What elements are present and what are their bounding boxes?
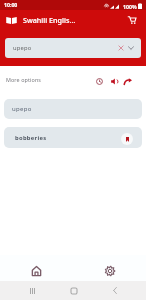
staticText: 100% [123, 3, 137, 10]
button[interactable]: upepo [5, 38, 141, 58]
button[interactable]: Back [108, 284, 121, 297]
staticText: Swahili Englis… [23, 15, 76, 25]
staticText: 10:00 [4, 1, 18, 8]
button[interactable]: Home [25, 261, 47, 280]
button[interactable]: Expand [124, 41, 138, 55]
button[interactable]: bobberies [4, 127, 142, 148]
button[interactable]: Recents [26, 284, 39, 297]
staticText: More options [6, 76, 41, 83]
button[interactable]: Shopping cart [124, 12, 140, 28]
button[interactable]: History [92, 74, 106, 88]
button[interactable]: Clear [114, 41, 128, 55]
staticText: bobberies [15, 134, 47, 142]
button[interactable]: Share [121, 74, 135, 88]
button[interactable]: Dictionary [3, 11, 20, 28]
button[interactable]: Home button [67, 284, 80, 297]
staticText: upepo [13, 44, 32, 52]
button[interactable]: Settings [99, 261, 121, 280]
button[interactable]: Pronounce [107, 74, 121, 88]
button[interactable]: Bookmark [121, 133, 133, 145]
button[interactable]: upepo [4, 99, 142, 119]
staticText: upepo [12, 105, 32, 113]
